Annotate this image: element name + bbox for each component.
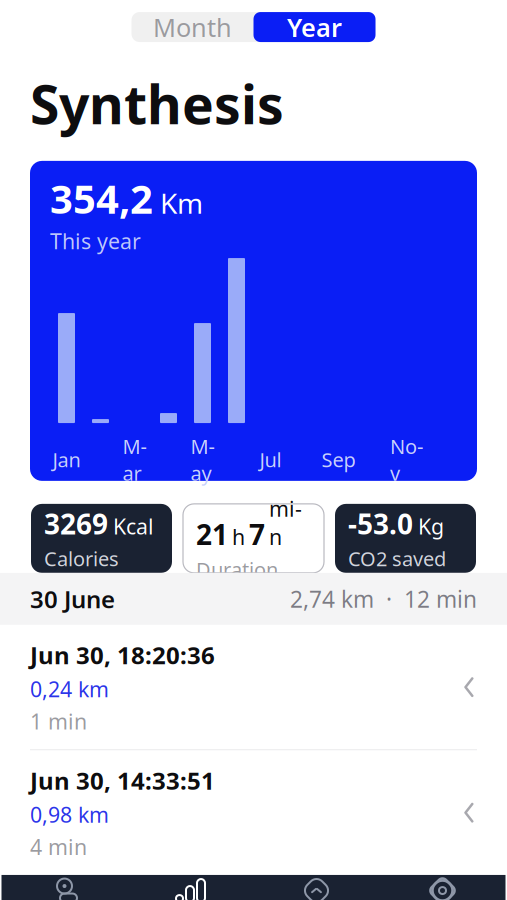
staticText: 354,2 [50, 172, 153, 225]
button[interactable]: Year [253, 12, 375, 42]
staticText: Jan [52, 446, 80, 473]
staticText: 3269 [44, 505, 108, 542]
staticText: Synthesis [30, 68, 284, 139]
button[interactable]: -53.0 [335, 504, 476, 573]
staticText: Mar [122, 433, 146, 486]
staticText: 7 [249, 516, 265, 553]
staticText: 1 min [30, 707, 87, 735]
staticText: 30 June [30, 583, 115, 615]
staticText: Jul [259, 446, 281, 473]
staticText: Duration [196, 556, 278, 582]
staticText: May [190, 433, 214, 486]
staticText: Year [287, 10, 342, 44]
button[interactable]: 21 [183, 504, 324, 573]
staticText: 4 min [30, 833, 87, 861]
staticText: min [269, 494, 302, 551]
staticText: Calories [44, 545, 119, 572]
staticText: Jun 30, 14:33:51 [30, 764, 215, 796]
staticText: Month [153, 10, 232, 44]
staticText: Kg [418, 512, 444, 540]
staticText: Kcal [113, 512, 154, 540]
button[interactable]: Settings [379, 875, 505, 900]
staticText: 2,74 km · 12 min [290, 584, 477, 614]
button[interactable]: Jun 30, 14:33:51 [0, 750, 507, 875]
staticText: Sep [321, 446, 355, 473]
staticText: 0,98 km [30, 800, 109, 829]
staticText: CO2 saved [348, 545, 446, 572]
button[interactable]: Fitness [253, 875, 379, 900]
staticText: Jun 30, 18:20:36 [30, 639, 215, 671]
staticText: Nov [390, 433, 423, 486]
staticText: Km [160, 184, 203, 221]
staticText: h [232, 523, 245, 551]
button[interactable]: Statistics [127, 875, 253, 900]
staticText: 0,24 km [30, 675, 109, 703]
button[interactable]: 3269 [31, 504, 172, 573]
staticText: -53.0 [348, 505, 413, 542]
button[interactable]: Map [1, 875, 127, 900]
staticText: 21 [196, 516, 228, 553]
button[interactable]: Month [131, 12, 253, 42]
staticText: This year [50, 227, 141, 255]
button[interactable]: Jun 30, 18:20:36 [0, 625, 507, 750]
